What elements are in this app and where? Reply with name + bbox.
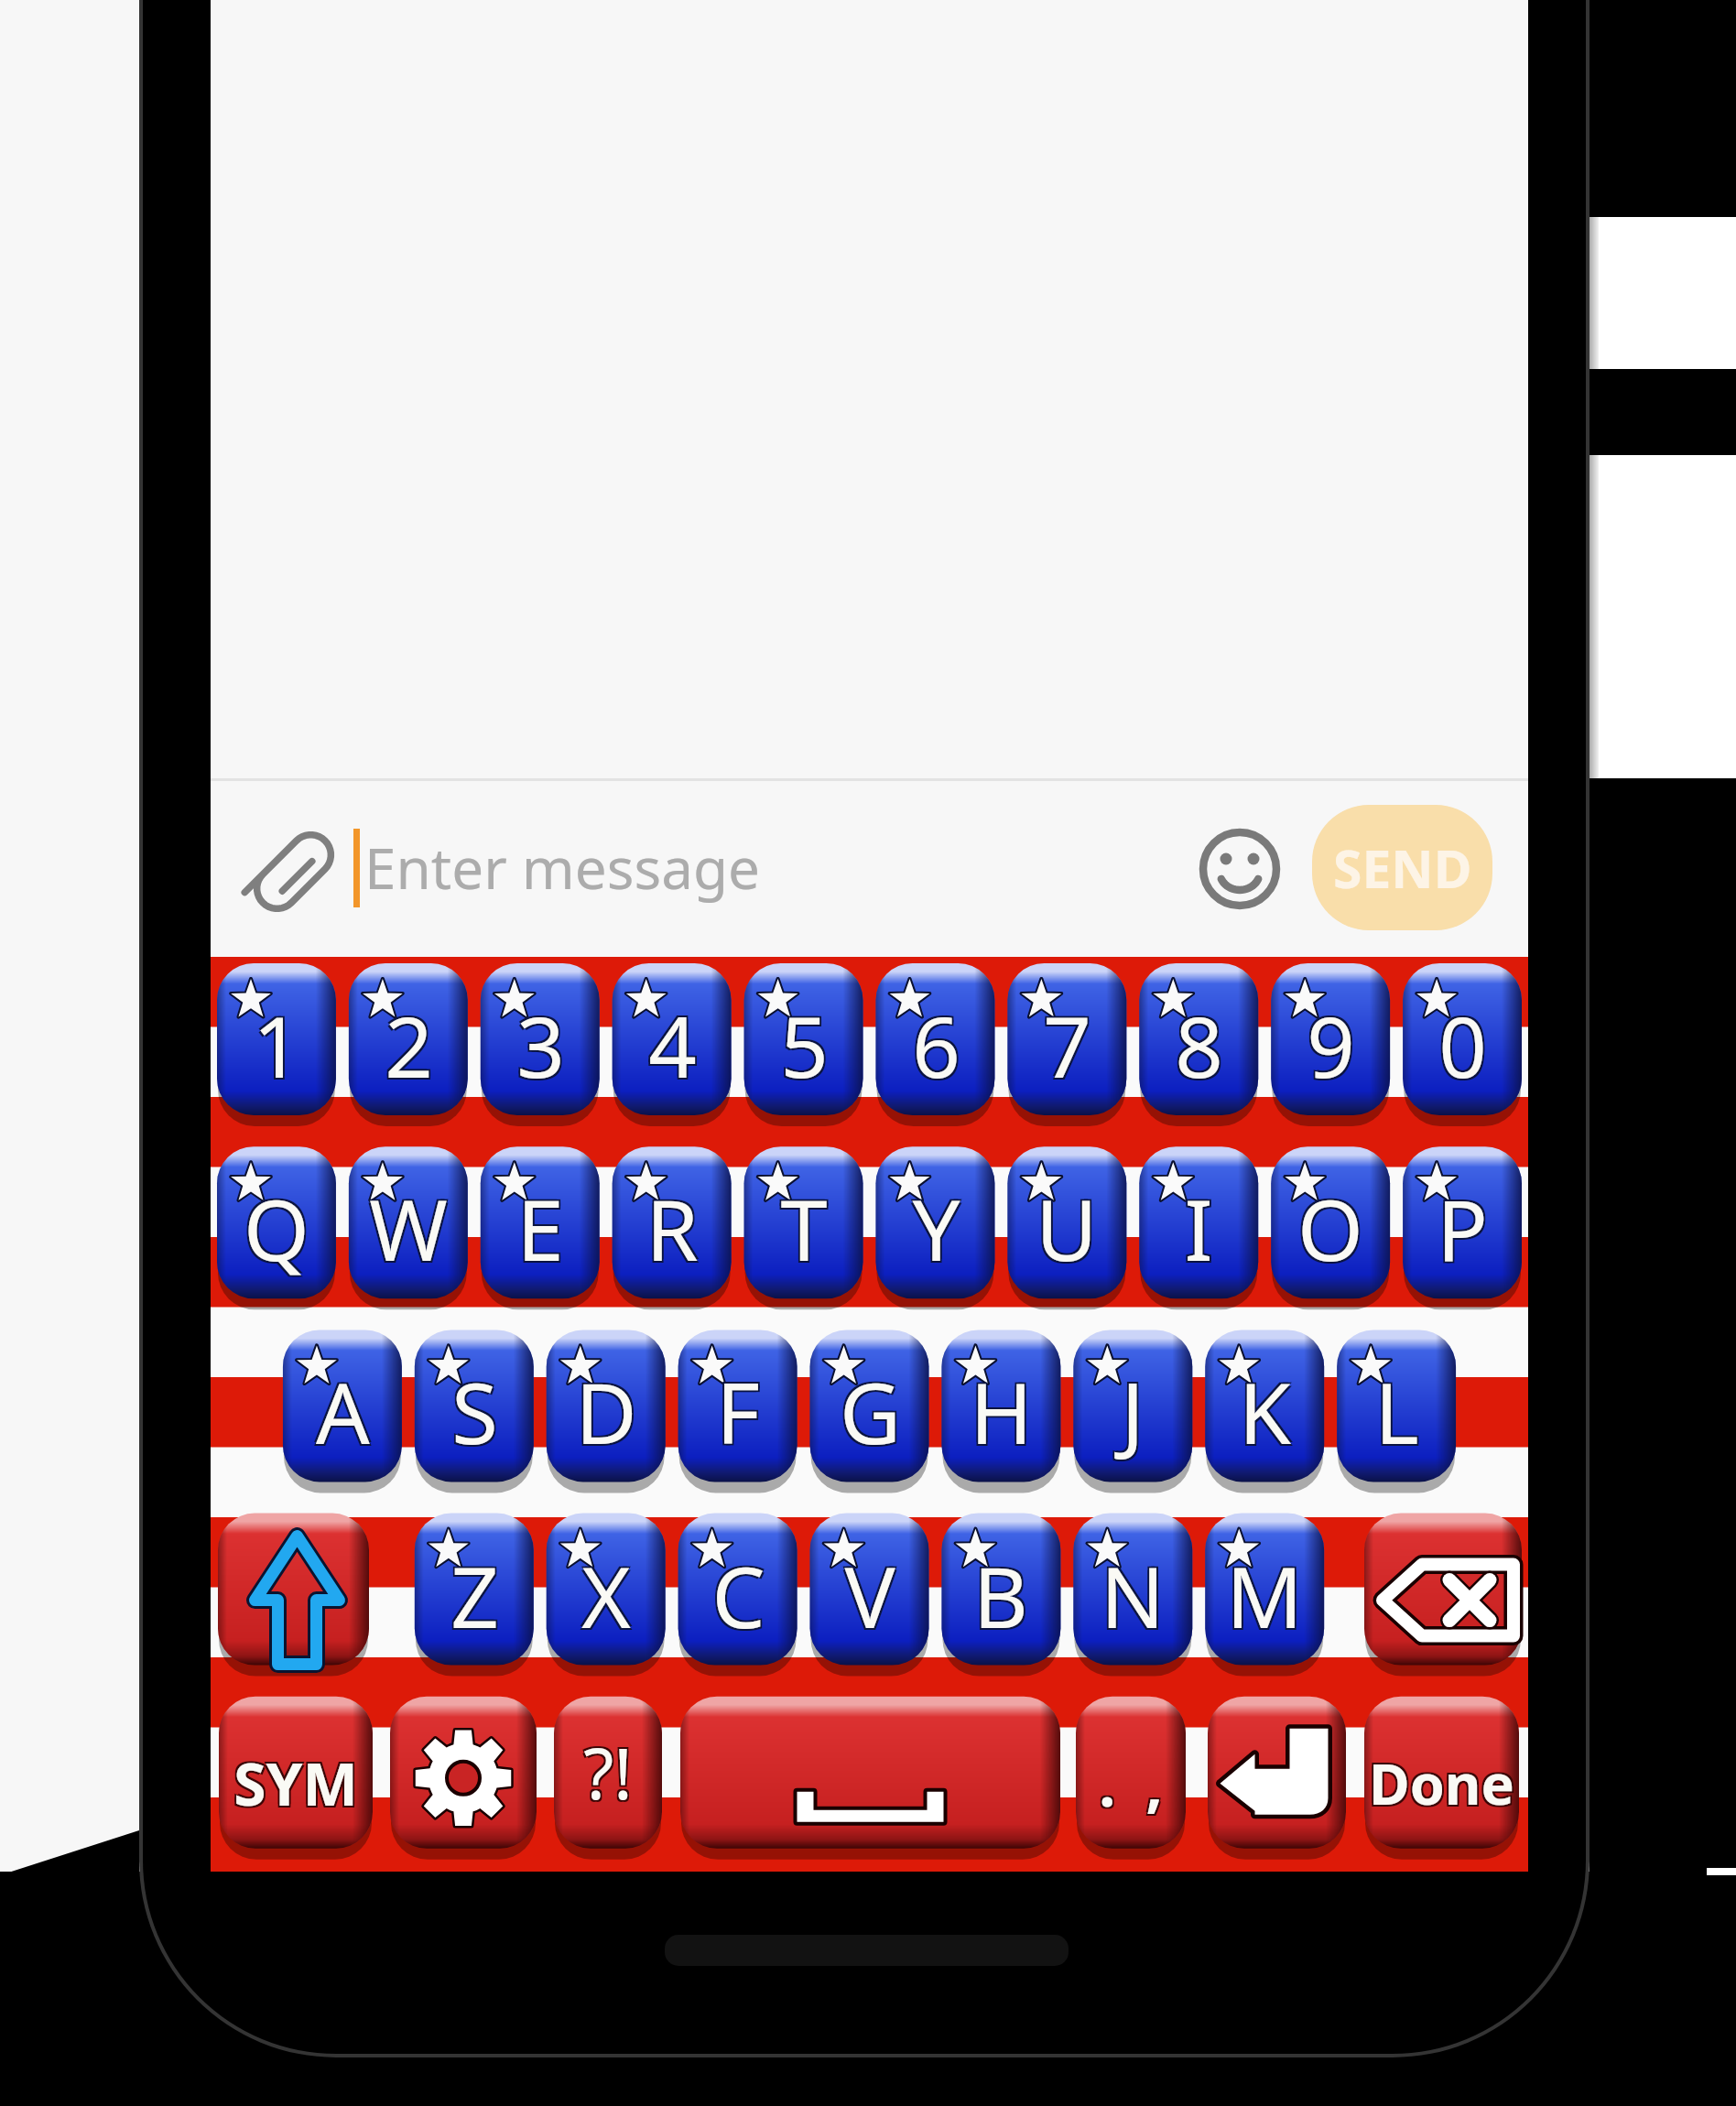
staticText: V (846, 1536, 897, 1651)
button[interactable]: Enter (1208, 1697, 1346, 1849)
staticText: O (1299, 1169, 1365, 1284)
button[interactable]: ?! (554, 1697, 662, 1849)
button[interactable]: SEND (1312, 805, 1492, 930)
staticText: P (1437, 1171, 1488, 1286)
button[interactable]: 8 (1139, 963, 1258, 1115)
button[interactable]: Y (876, 1146, 995, 1298)
staticText: 9 (1308, 990, 1357, 1104)
staticText: V (842, 1540, 894, 1655)
button[interactable]: Attach file (255, 827, 333, 909)
button[interactable]: 7 (1007, 963, 1126, 1115)
button[interactable]: Q (217, 1146, 336, 1298)
button[interactable]: M (1205, 1514, 1324, 1666)
button[interactable]: I (1139, 1146, 1258, 1298)
staticText: Z (449, 1540, 497, 1655)
button[interactable]: X (547, 1514, 666, 1666)
button[interactable]: Emoji (1199, 829, 1280, 909)
staticText: 2 (386, 990, 435, 1104)
button[interactable]: Backspace (1364, 1514, 1522, 1666)
staticText: B (975, 1536, 1030, 1651)
staticText: T (778, 1173, 826, 1287)
button[interactable]: Done (1364, 1697, 1519, 1849)
button[interactable]: W (349, 1146, 468, 1298)
button[interactable]: H (941, 1330, 1060, 1482)
staticText: . , (1097, 1746, 1161, 1826)
button[interactable]: SYM (219, 1697, 373, 1849)
button[interactable]: B (941, 1514, 1060, 1666)
staticText: X (583, 1536, 633, 1651)
button[interactable]: U (1007, 1146, 1126, 1298)
staticText: Q (244, 1171, 309, 1286)
staticText: 1 (251, 986, 299, 1101)
button[interactable]: N (1073, 1514, 1192, 1666)
button[interactable]: 6 (876, 963, 995, 1115)
staticText: 6 (914, 986, 962, 1101)
staticText: K (1241, 1352, 1293, 1467)
staticText: L (1376, 1356, 1421, 1471)
button[interactable]: 0 (1403, 963, 1522, 1115)
button[interactable]: O (1271, 1146, 1390, 1298)
button[interactable]: 9 (1271, 963, 1390, 1115)
staticText: P (1438, 1173, 1490, 1287)
staticText: K (1237, 1356, 1289, 1471)
staticText: X (580, 1536, 629, 1651)
staticText: 5 (782, 990, 830, 1104)
button[interactable]: J (1073, 1330, 1192, 1482)
button[interactable]: 5 (744, 963, 863, 1115)
staticText: ?! (583, 1725, 633, 1820)
button[interactable]: D (547, 1330, 666, 1482)
staticText: M (1228, 1540, 1305, 1655)
button[interactable]: Enter message (350, 802, 1174, 932)
button[interactable]: Shift (218, 1514, 369, 1666)
staticText: U (1037, 1169, 1100, 1284)
button[interactable]: K (1205, 1330, 1324, 1482)
staticText: 3 (515, 990, 563, 1104)
staticText: Z (450, 1538, 499, 1653)
button[interactable]: S (415, 1330, 534, 1482)
staticText: F (718, 1356, 762, 1471)
button[interactable]: 1 (217, 963, 336, 1115)
staticText: D (575, 1354, 637, 1469)
staticText: M (1226, 1538, 1303, 1653)
staticText: I (1186, 1173, 1215, 1287)
staticText: 6 (914, 990, 962, 1104)
staticText: 2 (386, 986, 435, 1101)
staticText: 1 (253, 988, 301, 1102)
staticText: 4 (648, 988, 697, 1102)
staticText: 9 (1305, 990, 1353, 1104)
staticText: U (1034, 1173, 1096, 1287)
button[interactable]: Z (415, 1514, 534, 1666)
button[interactable]: C (678, 1514, 797, 1666)
staticText: Done (1367, 1747, 1513, 1823)
staticText: L (1373, 1352, 1417, 1467)
staticText: H (971, 1352, 1035, 1467)
staticText: 7 (1041, 990, 1090, 1104)
staticText: SYM (232, 1745, 356, 1825)
staticText: 3 (515, 986, 563, 1101)
button[interactable]: . , (1076, 1697, 1186, 1849)
button[interactable]: 3 (481, 963, 600, 1115)
button[interactable]: Settings (390, 1697, 537, 1849)
button[interactable]: T (744, 1146, 863, 1298)
staticText: 9 (1305, 986, 1353, 1101)
button[interactable]: F (678, 1330, 797, 1482)
staticText: . , (1101, 1742, 1165, 1822)
button[interactable]: 4 (613, 963, 732, 1115)
button[interactable]: E (481, 1146, 600, 1298)
staticText: K (1241, 1356, 1293, 1471)
staticText: D (573, 1356, 635, 1471)
button[interactable]: 2 (349, 963, 468, 1115)
button[interactable]: Space (680, 1697, 1060, 1849)
staticText: A (316, 1354, 370, 1469)
staticText: N (1099, 1540, 1163, 1655)
staticText: X (580, 1540, 629, 1655)
button[interactable]: P (1403, 1146, 1522, 1298)
button[interactable]: R (613, 1146, 732, 1298)
button[interactable]: V (810, 1514, 929, 1666)
button[interactable]: A (283, 1330, 402, 1482)
button[interactable]: G (810, 1330, 929, 1482)
button[interactable]: L (1337, 1330, 1456, 1482)
staticText: I (1182, 1169, 1211, 1284)
staticText: T (782, 1173, 830, 1287)
staticText: Done (1371, 1743, 1516, 1819)
